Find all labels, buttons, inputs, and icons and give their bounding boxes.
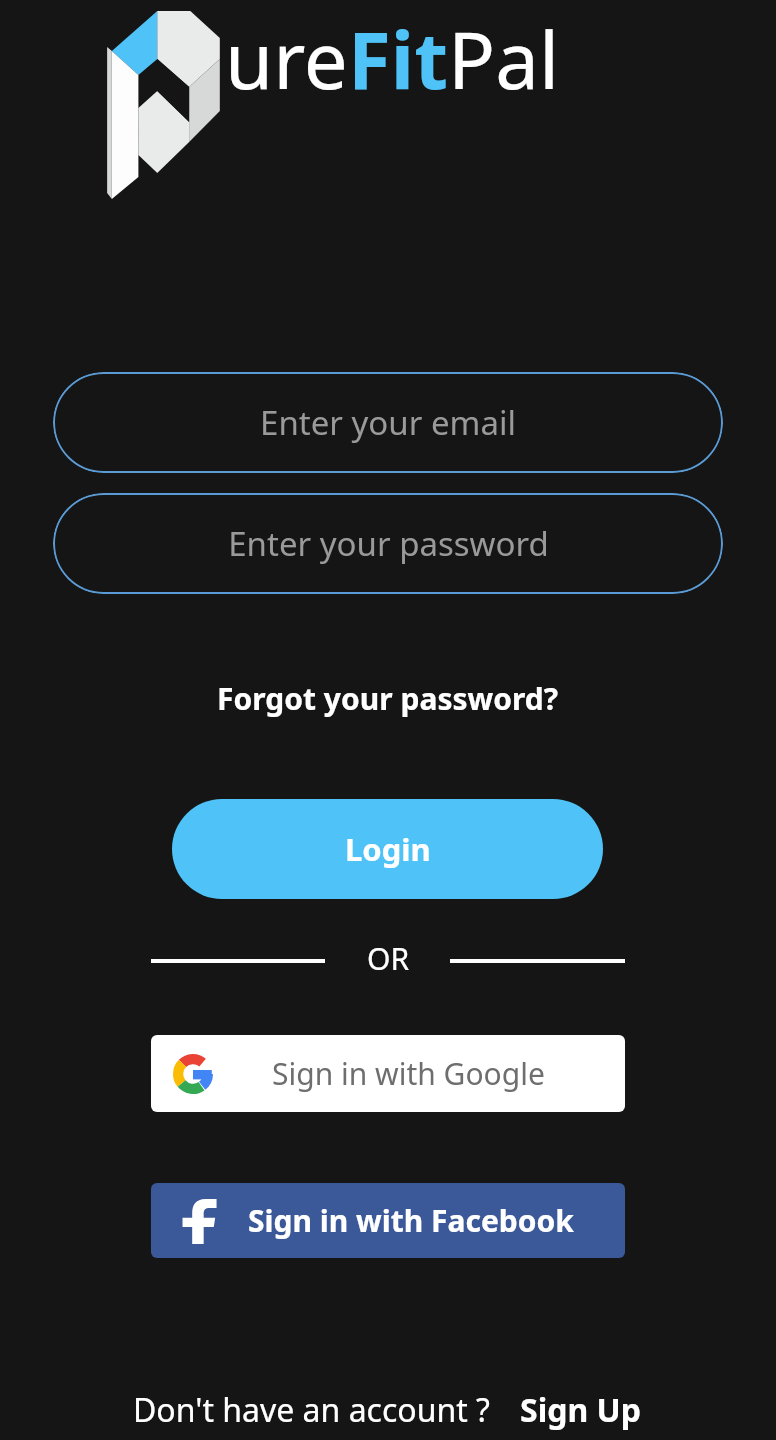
staticText: OR bbox=[367, 938, 410, 979]
staticText: Sign Up bbox=[520, 1388, 641, 1432]
button[interactable]: Google bbox=[151, 1035, 625, 1112]
staticText: Enter your password bbox=[228, 521, 549, 566]
button[interactable]: Forgot your password? bbox=[0, 674, 776, 722]
staticText: Don't have an account ? bbox=[133, 1388, 490, 1432]
staticText: Login bbox=[345, 828, 431, 870]
staticText: ure bbox=[225, 6, 348, 112]
staticText: Enter your email bbox=[260, 400, 516, 445]
button[interactable]: Enter your password bbox=[53, 493, 723, 594]
other: Facebook bbox=[177, 1198, 223, 1244]
button[interactable]: Login bbox=[172, 799, 603, 899]
button[interactable]: Sign Up bbox=[518, 1386, 643, 1434]
staticText: Sign in with Facebook bbox=[248, 1200, 574, 1241]
button[interactable]: Facebook bbox=[151, 1183, 625, 1258]
staticText: Fit bbox=[348, 6, 448, 112]
staticText: Sign in with Google bbox=[272, 1053, 545, 1094]
button[interactable]: Enter your email bbox=[53, 372, 723, 473]
other: Google bbox=[173, 1054, 213, 1094]
staticText: Forgot your password? bbox=[217, 678, 559, 719]
staticText: Pal bbox=[448, 6, 560, 112]
